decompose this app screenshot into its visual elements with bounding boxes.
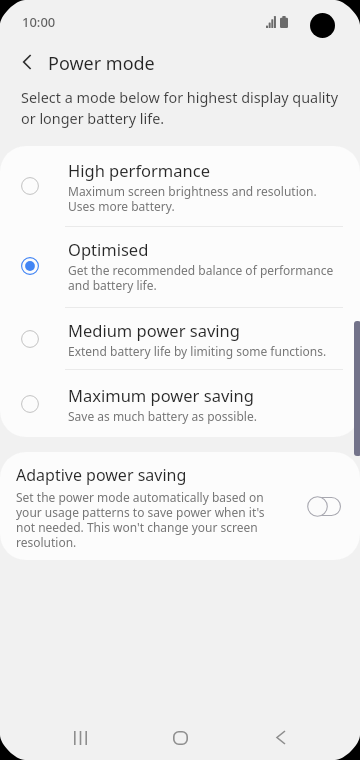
- staticText: Save as much battery as possible.: [68, 408, 257, 424]
- staticText: Get the recommended balance of performan…: [68, 262, 334, 293]
- button[interactable]: Adaptive power saving toggle: [306, 495, 343, 518]
- staticText: Extend battery life by limiting some fun…: [68, 343, 327, 359]
- button[interactable]: Maximum power saving: [0, 369, 360, 437]
- button[interactable]: High performance: [0, 146, 360, 226]
- button[interactable]: Back: [10, 45, 44, 79]
- staticText: Maximum power saving: [68, 384, 254, 406]
- staticText: High performance: [68, 159, 210, 181]
- staticText: Medium power saving: [68, 319, 240, 341]
- staticText: Optimised: [68, 238, 149, 260]
- staticText: 10:00: [22, 13, 56, 31]
- staticText: Maximum screen brightness and resolution…: [68, 183, 317, 214]
- staticText: Power mode: [48, 51, 155, 76]
- staticText: Select a mode below for highest display …: [21, 88, 355, 128]
- staticText: Set the power mode automatically based o…: [16, 489, 284, 550]
- button[interactable]: Recents: [56, 715, 104, 760]
- button[interactable]: Home: [156, 715, 204, 760]
- button[interactable]: Back: [257, 715, 305, 760]
- button[interactable]: Medium power saving: [0, 307, 360, 369]
- button[interactable]: Optimised: [0, 226, 360, 307]
- staticText: Adaptive power saving: [16, 464, 187, 486]
